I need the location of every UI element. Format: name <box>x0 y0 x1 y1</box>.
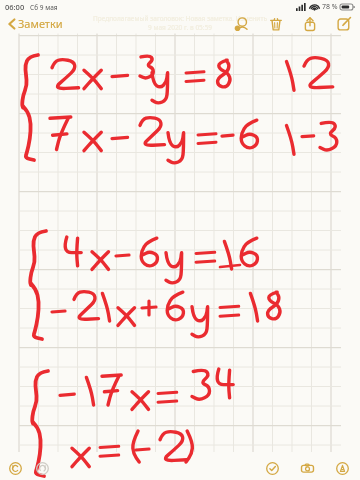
staticText: 06:00 <box>5 2 25 12</box>
button[interactable]: Заметки <box>4 14 67 33</box>
button[interactable]: Delete <box>267 15 285 33</box>
staticText: Предполагаемый заголовок: Новая заметка.… <box>93 14 267 23</box>
button[interactable]: Add people <box>233 15 251 33</box>
button[interactable]: Compose <box>335 15 353 33</box>
staticText: 78 % <box>322 2 338 12</box>
staticText: 9 мая 2020 г. в 05:59 <box>148 23 213 32</box>
button[interactable]: Share <box>301 15 319 33</box>
button[interactable]: Camera <box>298 459 316 477</box>
staticText: Сб 9 мая <box>30 3 58 12</box>
button[interactable]: Checklist <box>263 459 281 477</box>
button[interactable]: Markup <box>333 459 351 477</box>
staticText: Заметки <box>18 16 63 31</box>
button[interactable]: Redo <box>33 459 51 477</box>
button[interactable]: Undo <box>6 459 24 477</box>
